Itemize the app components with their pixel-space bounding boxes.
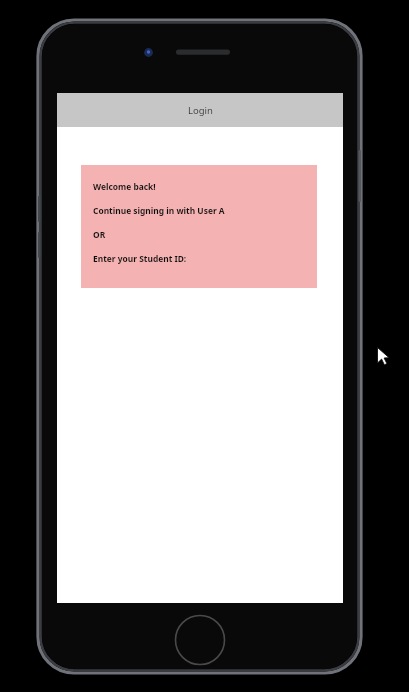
button[interactable]: Enter your Student ID: xyxy=(93,253,187,264)
staticText: Enter your Student ID: xyxy=(93,253,187,264)
button[interactable]: Continue signing in with User A xyxy=(93,205,225,216)
button[interactable]: Login xyxy=(57,93,343,127)
button[interactable]: Welcome back! xyxy=(81,165,317,288)
staticText: Login xyxy=(188,104,213,117)
button[interactable]: Welcome back! xyxy=(93,181,156,192)
button[interactable]: OR xyxy=(93,229,106,240)
staticText: OR xyxy=(93,229,106,240)
staticText: Welcome back! xyxy=(93,181,156,192)
staticText: Continue signing in with User A xyxy=(93,205,225,216)
